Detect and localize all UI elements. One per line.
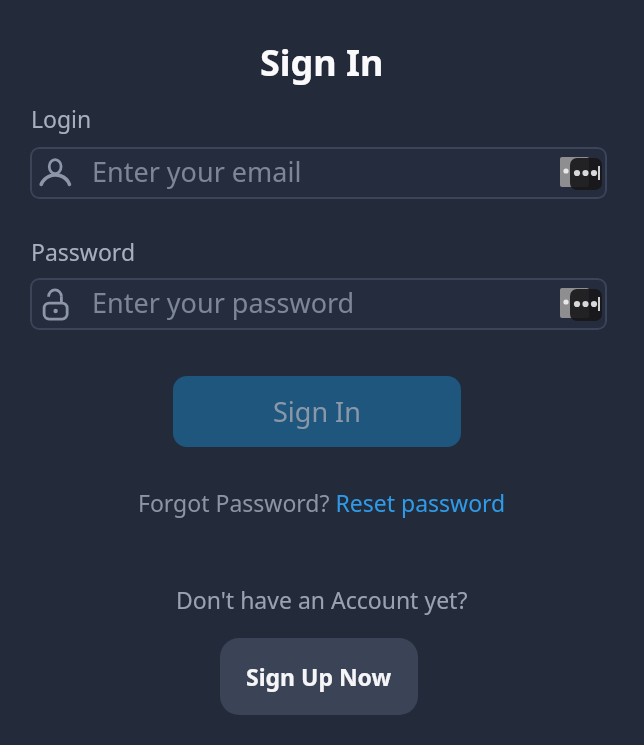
staticText: Don't have an Account yet?: [176, 584, 468, 615]
staticText: Sign In: [273, 393, 361, 430]
staticText: Enter your email: [92, 153, 302, 190]
staticText: Login: [31, 103, 92, 134]
staticText: Sign Up Now: [246, 661, 392, 692]
staticText: Enter your password: [92, 284, 355, 321]
staticText: Password: [31, 236, 136, 267]
staticText: Forgot Password? Reset password: [138, 487, 506, 518]
staticText: Sign In: [260, 38, 384, 87]
